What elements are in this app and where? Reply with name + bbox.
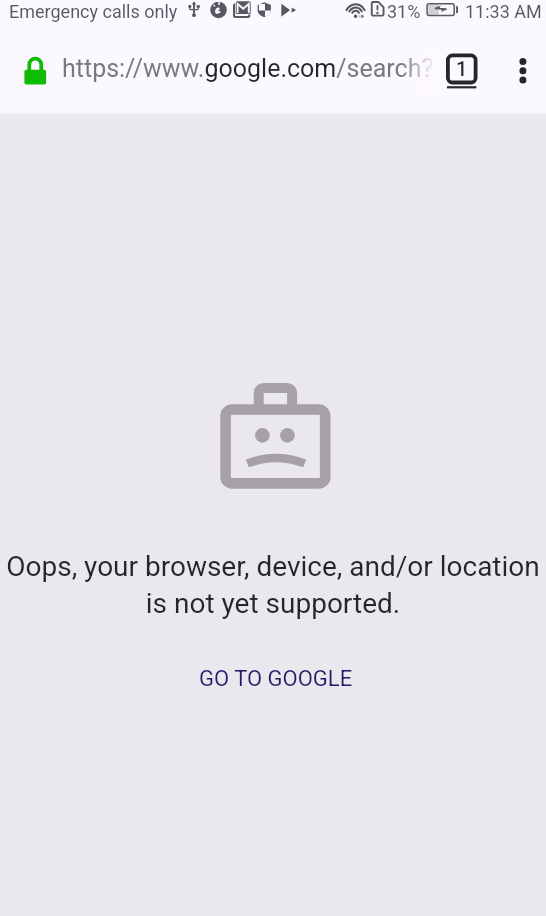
staticText: Oops, your browser, device, and/or locat… — [2, 550, 544, 620]
staticText: 1 — [456, 57, 468, 80]
staticText: Emergency calls only — [9, 1, 178, 22]
staticText: 11:33 AM — [465, 1, 542, 22]
button[interactable]: GO TO GOOGLE — [185, 658, 367, 700]
button[interactable]: Tabs — [442, 48, 486, 96]
other: Secure connection — [22, 53, 48, 87]
staticText: GO TO GOOGLE — [199, 666, 353, 692]
staticText: 31% — [387, 1, 421, 22]
staticText: https://www.google.com/search? — [62, 54, 434, 83]
button[interactable]: More options — [504, 48, 544, 92]
